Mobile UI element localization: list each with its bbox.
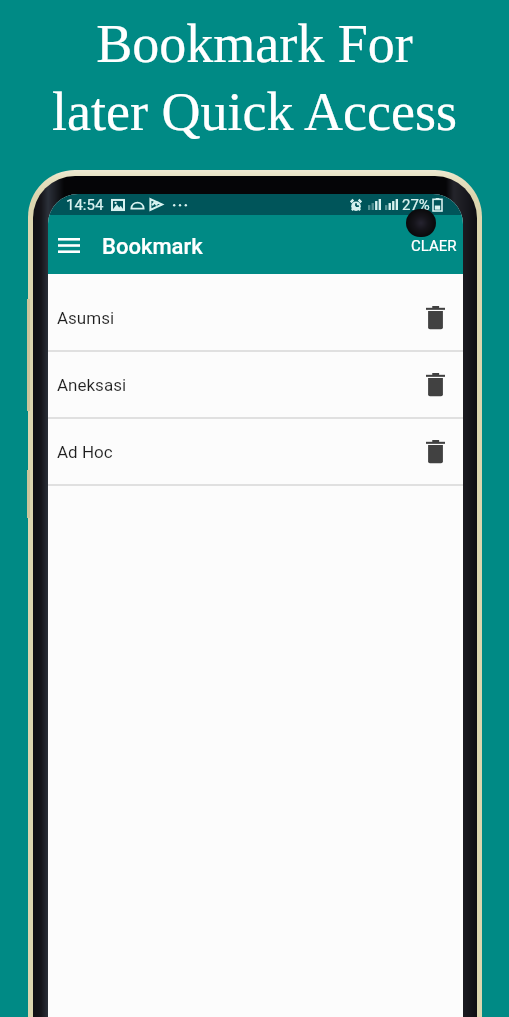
staticText: 27% bbox=[402, 196, 430, 214]
button[interactable]: Asumsi bbox=[48, 285, 463, 350]
staticText: Bookmark bbox=[102, 234, 203, 260]
staticText: 14:54 bbox=[66, 196, 104, 214]
button[interactable]: Delete Ad Hoc bbox=[418, 435, 452, 469]
staticText: CLAER bbox=[411, 237, 457, 255]
button[interactable]: Delete Asumsi bbox=[418, 301, 452, 335]
button[interactable]: Aneksasi bbox=[48, 352, 463, 417]
button[interactable]: Ad Hoc bbox=[48, 419, 463, 484]
staticText: Aneksasi bbox=[57, 375, 127, 395]
staticText: Ad Hoc bbox=[57, 442, 113, 462]
button[interactable]: Menu bbox=[48, 222, 92, 268]
button[interactable]: Delete Aneksasi bbox=[418, 368, 452, 402]
staticText: Bookmark For later Quick Access bbox=[0, 14, 509, 142]
button[interactable]: CLAER bbox=[403, 216, 463, 275]
staticText: Asumsi bbox=[57, 308, 115, 328]
